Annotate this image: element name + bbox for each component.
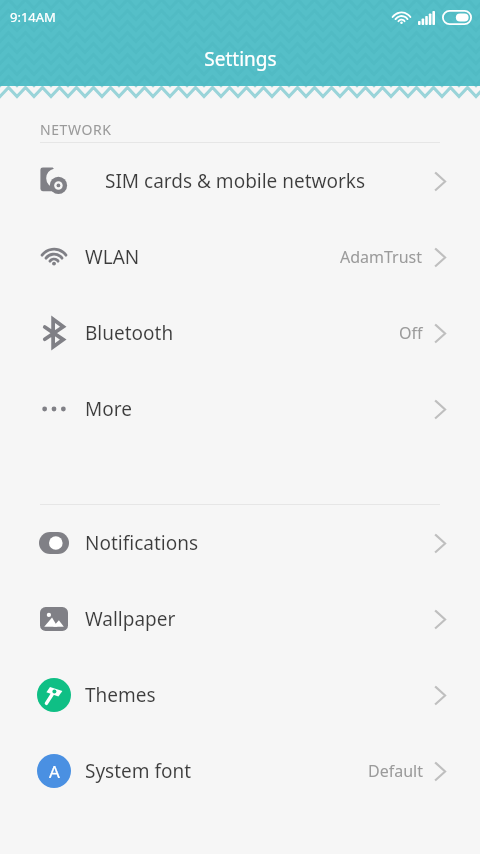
button[interactable]: SIM cards & mobile networks	[0, 143, 480, 219]
staticText: Themes	[85, 682, 156, 708]
button[interactable]: Wallpaper	[0, 581, 480, 657]
staticText: WLAN	[85, 244, 140, 270]
staticText: Settings	[204, 46, 277, 72]
button[interactable]: Notifications	[0, 505, 480, 581]
staticText: Notifications	[85, 530, 199, 556]
staticText: Off	[399, 322, 423, 344]
button[interactable]: Bluetooth	[0, 295, 480, 371]
staticText: System font	[85, 758, 192, 784]
staticText: SIM cards & mobile networks	[105, 168, 366, 194]
staticText: Default	[368, 760, 423, 782]
staticText: More	[85, 396, 132, 422]
staticText: Bluetooth	[85, 320, 174, 346]
staticText: A	[49, 760, 60, 783]
staticText: NETWORK	[40, 120, 112, 139]
button[interactable]: Themes	[0, 657, 480, 733]
staticText: Wallpaper	[85, 606, 176, 632]
button[interactable]: A	[0, 733, 480, 809]
staticText: 9:14AM	[10, 8, 56, 26]
staticText: AdamTrust	[340, 246, 423, 268]
button[interactable]: More	[0, 371, 480, 447]
button[interactable]: WLAN	[0, 219, 480, 295]
